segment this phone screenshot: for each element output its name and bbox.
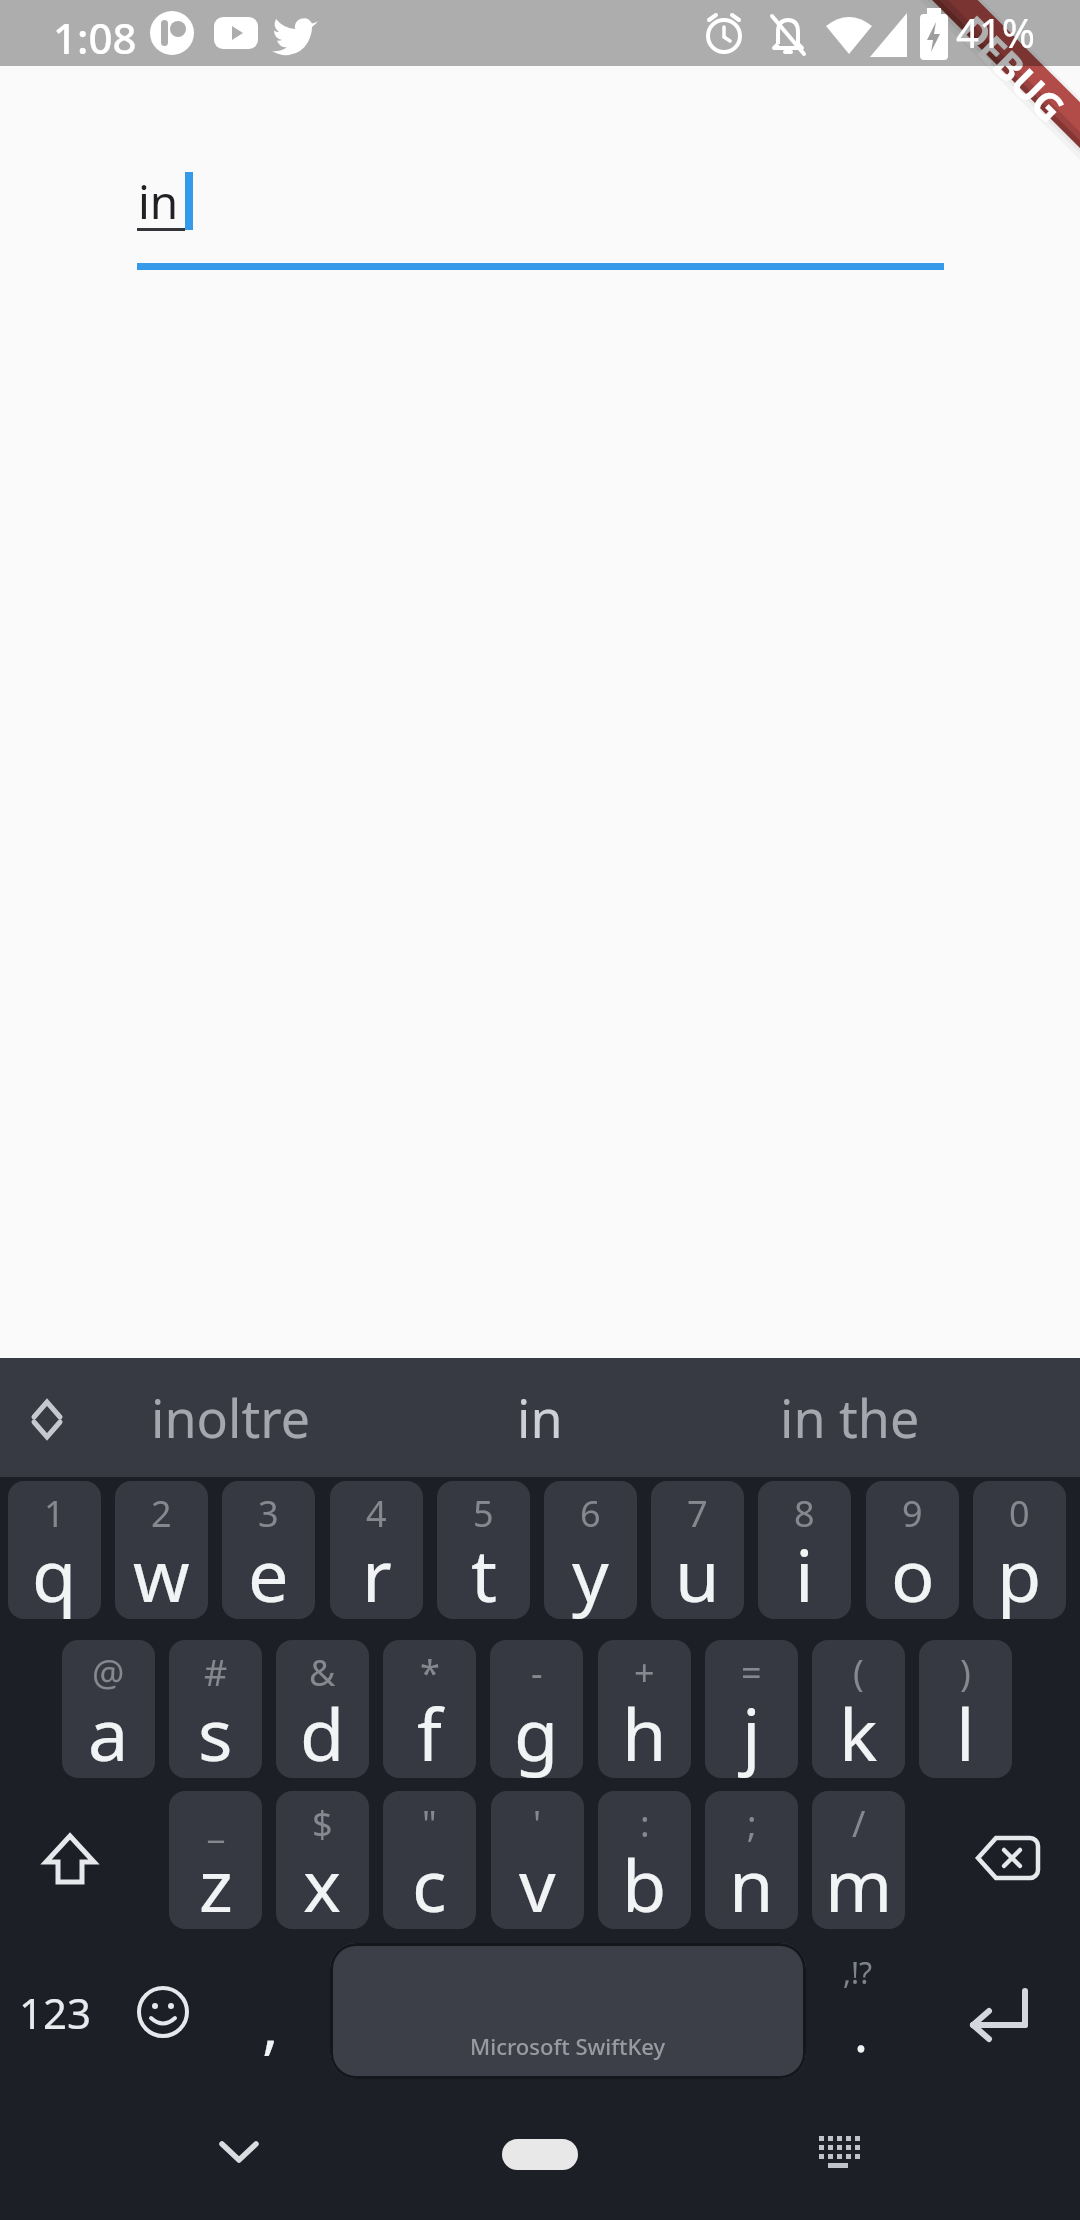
staticText: in the: [780, 1382, 920, 1453]
button[interactable]: [502, 2139, 578, 2170]
staticText: 9: [902, 1489, 923, 1538]
staticText: DEBUG: [948, 4, 1077, 133]
button[interactable]: :: [598, 1791, 691, 1929]
button[interactable]: 0: [973, 1481, 1066, 1619]
button[interactable]: #: [169, 1640, 262, 1778]
staticText: y: [572, 1525, 609, 1619]
staticText: /: [852, 1799, 866, 1848]
button[interactable]: 9: [866, 1481, 959, 1619]
staticText: o: [891, 1525, 935, 1619]
button[interactable]: /: [812, 1791, 905, 1929]
button[interactable]: $: [276, 1791, 369, 1929]
button[interactable]: [134, 1983, 192, 2041]
staticText: d: [300, 1684, 345, 1778]
staticText: w: [133, 1525, 190, 1619]
staticText: r: [362, 1525, 392, 1619]
button[interactable]: inoltre: [110, 1360, 350, 1475]
staticText: 41%: [956, 5, 1035, 59]
staticText: (: [853, 1648, 864, 1697]
button[interactable]: =: [705, 1640, 798, 1778]
staticText: +: [634, 1648, 655, 1697]
staticText: b: [622, 1835, 667, 1929]
button[interactable]: ": [383, 1791, 476, 1929]
staticText: g: [514, 1684, 559, 1778]
staticText: x: [303, 1835, 342, 1929]
button[interactable]: 4: [330, 1481, 423, 1619]
staticText: :: [640, 1799, 650, 1848]
staticText: t: [471, 1525, 497, 1619]
staticText: ": [422, 1799, 437, 1848]
button[interactable]: Microsoft SwiftKey: [330, 1943, 806, 2079]
staticText: a: [88, 1684, 129, 1778]
staticText: k: [839, 1684, 878, 1778]
button[interactable]: 3: [222, 1481, 315, 1619]
staticText: @: [92, 1648, 125, 1697]
button[interactable]: 123: [8, 1943, 103, 2081]
button[interactable]: +: [598, 1640, 691, 1778]
button[interactable]: 6: [544, 1481, 637, 1619]
staticText: -: [531, 1648, 543, 1697]
button[interactable]: 2: [115, 1481, 208, 1619]
button[interactable]: -: [490, 1640, 583, 1778]
staticText: $: [312, 1799, 333, 1848]
staticText: v: [519, 1835, 556, 1929]
button[interactable]: [972, 1834, 1044, 1890]
staticText: *: [420, 1648, 440, 1697]
button[interactable]: in: [430, 1360, 650, 1475]
staticText: s: [198, 1684, 233, 1778]
button[interactable]: [816, 2130, 862, 2174]
staticText: =: [741, 1648, 762, 1697]
button[interactable]: 5: [437, 1481, 530, 1619]
staticText: 4: [366, 1489, 387, 1538]
staticText: q: [32, 1525, 77, 1619]
button[interactable]: 1: [8, 1481, 101, 1619]
staticText: inoltre: [151, 1382, 310, 1453]
button[interactable]: ): [919, 1640, 1012, 1778]
staticText: z: [199, 1835, 233, 1929]
button[interactable]: &: [276, 1640, 369, 1778]
button[interactable]: [20, 1390, 76, 1450]
staticText: ': [533, 1799, 542, 1848]
staticText: ,: [262, 1982, 279, 2066]
staticText: in: [138, 170, 179, 233]
staticText: m: [825, 1835, 893, 1929]
staticText: Microsoft SwiftKey: [470, 2031, 666, 2061]
staticText: j: [742, 1684, 761, 1778]
staticText: h: [622, 1684, 667, 1778]
staticText: 1: [44, 1489, 65, 1538]
button[interactable]: ;: [705, 1791, 798, 1929]
staticText: l: [956, 1684, 975, 1778]
staticText: 5: [473, 1489, 494, 1538]
button[interactable]: in the: [740, 1360, 960, 1475]
staticText: ): [960, 1648, 971, 1697]
staticText: 8: [794, 1489, 815, 1538]
staticText: e: [248, 1525, 289, 1619]
button[interactable]: [38, 1830, 102, 1894]
button[interactable]: ': [491, 1791, 584, 1929]
staticText: f: [417, 1684, 442, 1778]
staticText: _: [208, 1799, 224, 1848]
staticText: c: [412, 1835, 447, 1929]
staticText: p: [997, 1525, 1042, 1619]
button[interactable]: (: [812, 1640, 905, 1778]
button[interactable]: [218, 2136, 262, 2168]
staticText: ,!?: [843, 1952, 873, 1993]
staticText: &: [309, 1648, 336, 1697]
button[interactable]: 8: [758, 1481, 851, 1619]
staticText: u: [675, 1525, 720, 1619]
staticText: 3: [258, 1489, 279, 1538]
staticText: 0: [1009, 1489, 1030, 1538]
staticText: 2: [151, 1489, 172, 1538]
button[interactable]: @: [62, 1640, 155, 1778]
button[interactable]: [963, 1985, 1035, 2045]
staticText: in: [517, 1382, 563, 1453]
button[interactable]: _: [169, 1791, 262, 1929]
button[interactable]: *: [383, 1640, 476, 1778]
staticText: 123: [19, 1984, 92, 2041]
staticText: i: [795, 1525, 814, 1619]
staticText: n: [729, 1835, 774, 1929]
staticText: 6: [580, 1489, 601, 1538]
button[interactable]: 7: [651, 1481, 744, 1619]
staticText: 7: [687, 1489, 708, 1538]
staticText: ;: [747, 1799, 757, 1848]
